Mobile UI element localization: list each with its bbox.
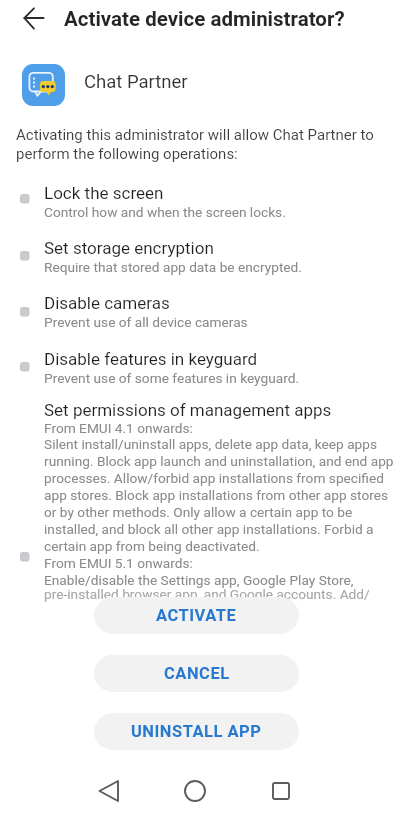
- button[interactable]: CANCEL: [94, 655, 299, 692]
- staticText: Disable features in keyguard: [44, 349, 258, 369]
- staticText: Prevent use of all device cameras: [44, 314, 248, 330]
- staticText: UNINSTALL APP: [131, 722, 262, 741]
- button[interactable]: [12, 0, 56, 36]
- staticText: CANCEL: [164, 664, 230, 683]
- staticText: Activating this administrator will allow…: [16, 126, 374, 162]
- button[interactable]: ACTIVATE: [94, 597, 299, 634]
- button[interactable]: [171, 767, 219, 815]
- staticText: ACTIVATE: [156, 606, 237, 625]
- button[interactable]: UNINSTALL APP: [94, 713, 299, 750]
- staticText: Prevent use of some features in keyguard…: [44, 370, 300, 386]
- staticText: Control how and when the screen locks.: [44, 204, 286, 220]
- staticText: Set permissions of management apps: [44, 400, 332, 420]
- staticText: Chat Partner: [84, 71, 188, 93]
- staticText: Activate device administrator?: [64, 7, 345, 31]
- staticText: pre-installed browser app, and Google ac…: [44, 586, 370, 602]
- staticText: From EMUI 4.1 onwards: Silent install/un…: [44, 420, 394, 589]
- staticText: Require that stored app data be encrypte…: [44, 259, 302, 275]
- button[interactable]: [84, 767, 132, 815]
- staticText: Disable cameras: [44, 293, 170, 313]
- staticText: Set storage encryption: [44, 238, 214, 258]
- button[interactable]: [257, 767, 305, 815]
- staticText: Lock the screen: [44, 183, 164, 203]
